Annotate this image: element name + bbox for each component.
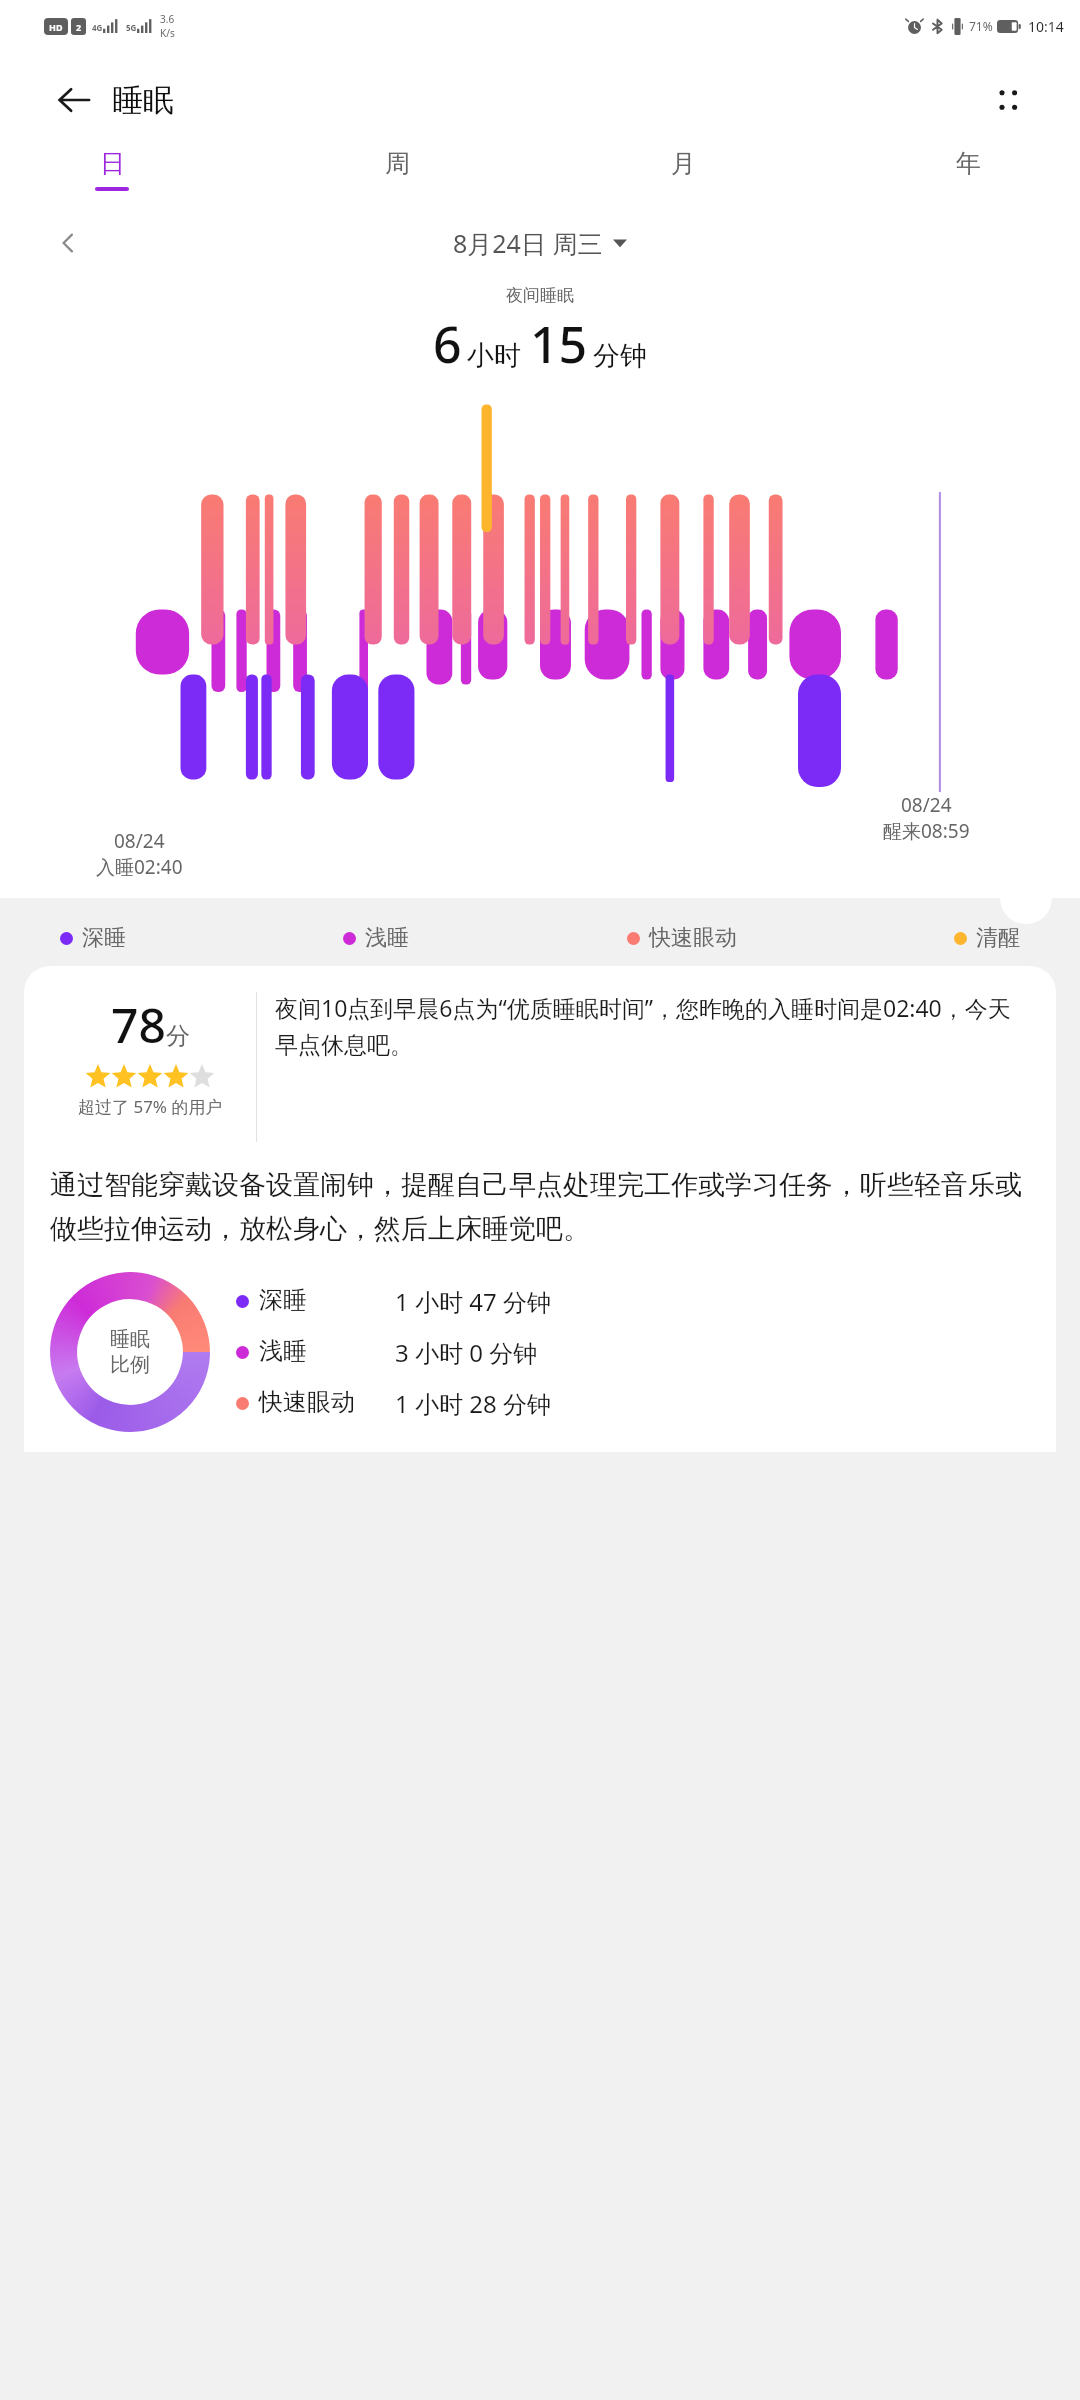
- staticText: 月: [671, 148, 696, 179]
- staticText: 夜间10点到早晨6点为“优质睡眠时间”，您昨晚的入睡时间是02:40，今天早点休…: [275, 992, 1030, 1060]
- button[interactable]: 周: [365, 148, 429, 191]
- staticText: 深睡: [82, 924, 126, 952]
- button[interactable]: Scroll handle: [1000, 872, 1052, 924]
- button[interactable]: 快速眼动: [236, 1387, 1030, 1420]
- staticText: 浅睡: [259, 1336, 387, 1366]
- staticText: 快速眼动: [259, 1387, 387, 1417]
- staticText: 通过智能穿戴设备设置闹钟，提醒自己早点处理完工作或学习任务，听些轻音乐或做些拉伸…: [50, 1168, 1030, 1246]
- staticText: 夜间睡眠: [0, 285, 1080, 306]
- staticText: 超过了 57% 的用户: [78, 1095, 223, 1118]
- staticText: 10:14: [1028, 17, 1064, 36]
- staticText: 08/24: [901, 792, 952, 818]
- staticText: 浅睡: [365, 924, 409, 952]
- staticText: 比例: [110, 1352, 150, 1377]
- staticText: 小时: [467, 339, 521, 373]
- button[interactable]: 8月24日 周三: [453, 226, 603, 260]
- staticText: 1 小时 47 分钟: [395, 1285, 551, 1318]
- staticText: 2: [76, 21, 82, 33]
- button[interactable]: More options: [980, 72, 1036, 128]
- staticText: 快速眼动: [649, 924, 737, 952]
- staticText: 醒来08:59: [883, 818, 970, 844]
- staticText: 清醒: [976, 924, 1020, 952]
- staticText: 1 小时 28 分钟: [395, 1387, 551, 1420]
- button[interactable]: Back: [46, 72, 102, 128]
- staticText: 3.6: [160, 12, 175, 26]
- button[interactable]: 年: [936, 148, 1000, 191]
- staticText: 分钟: [593, 339, 647, 373]
- staticText: K/s: [160, 26, 175, 40]
- staticText: 08/24: [114, 828, 165, 854]
- staticText: 睡眠: [112, 81, 174, 120]
- staticText: 睡眠: [110, 1327, 150, 1352]
- staticText: 3 小时 0 分钟: [395, 1336, 538, 1369]
- staticText: 周: [385, 148, 410, 179]
- staticText: 78: [111, 992, 166, 1057]
- button[interactable]: 日: [80, 148, 144, 191]
- staticText: 日: [100, 148, 125, 179]
- staticText: 年: [956, 148, 981, 179]
- staticText: 6: [433, 310, 462, 378]
- staticText: 15: [530, 310, 588, 378]
- staticText: HD: [49, 21, 63, 33]
- button[interactable]: Previous day: [44, 219, 92, 267]
- button[interactable]: 浅睡: [343, 924, 409, 952]
- button[interactable]: 深睡: [60, 924, 126, 952]
- staticText: 5G: [126, 22, 137, 33]
- staticText: 分: [166, 1021, 190, 1051]
- button[interactable]: 浅睡: [236, 1336, 1030, 1369]
- staticText: 4G: [92, 22, 103, 33]
- button[interactable]: 月: [651, 148, 715, 191]
- staticText: 深睡: [259, 1285, 387, 1315]
- button[interactable]: 深睡: [236, 1285, 1030, 1318]
- staticText: 入睡02:40: [96, 854, 183, 880]
- button[interactable]: 快速眼动: [627, 924, 737, 952]
- staticText: 71%: [969, 18, 993, 34]
- button[interactable]: 清醒: [954, 924, 1020, 952]
